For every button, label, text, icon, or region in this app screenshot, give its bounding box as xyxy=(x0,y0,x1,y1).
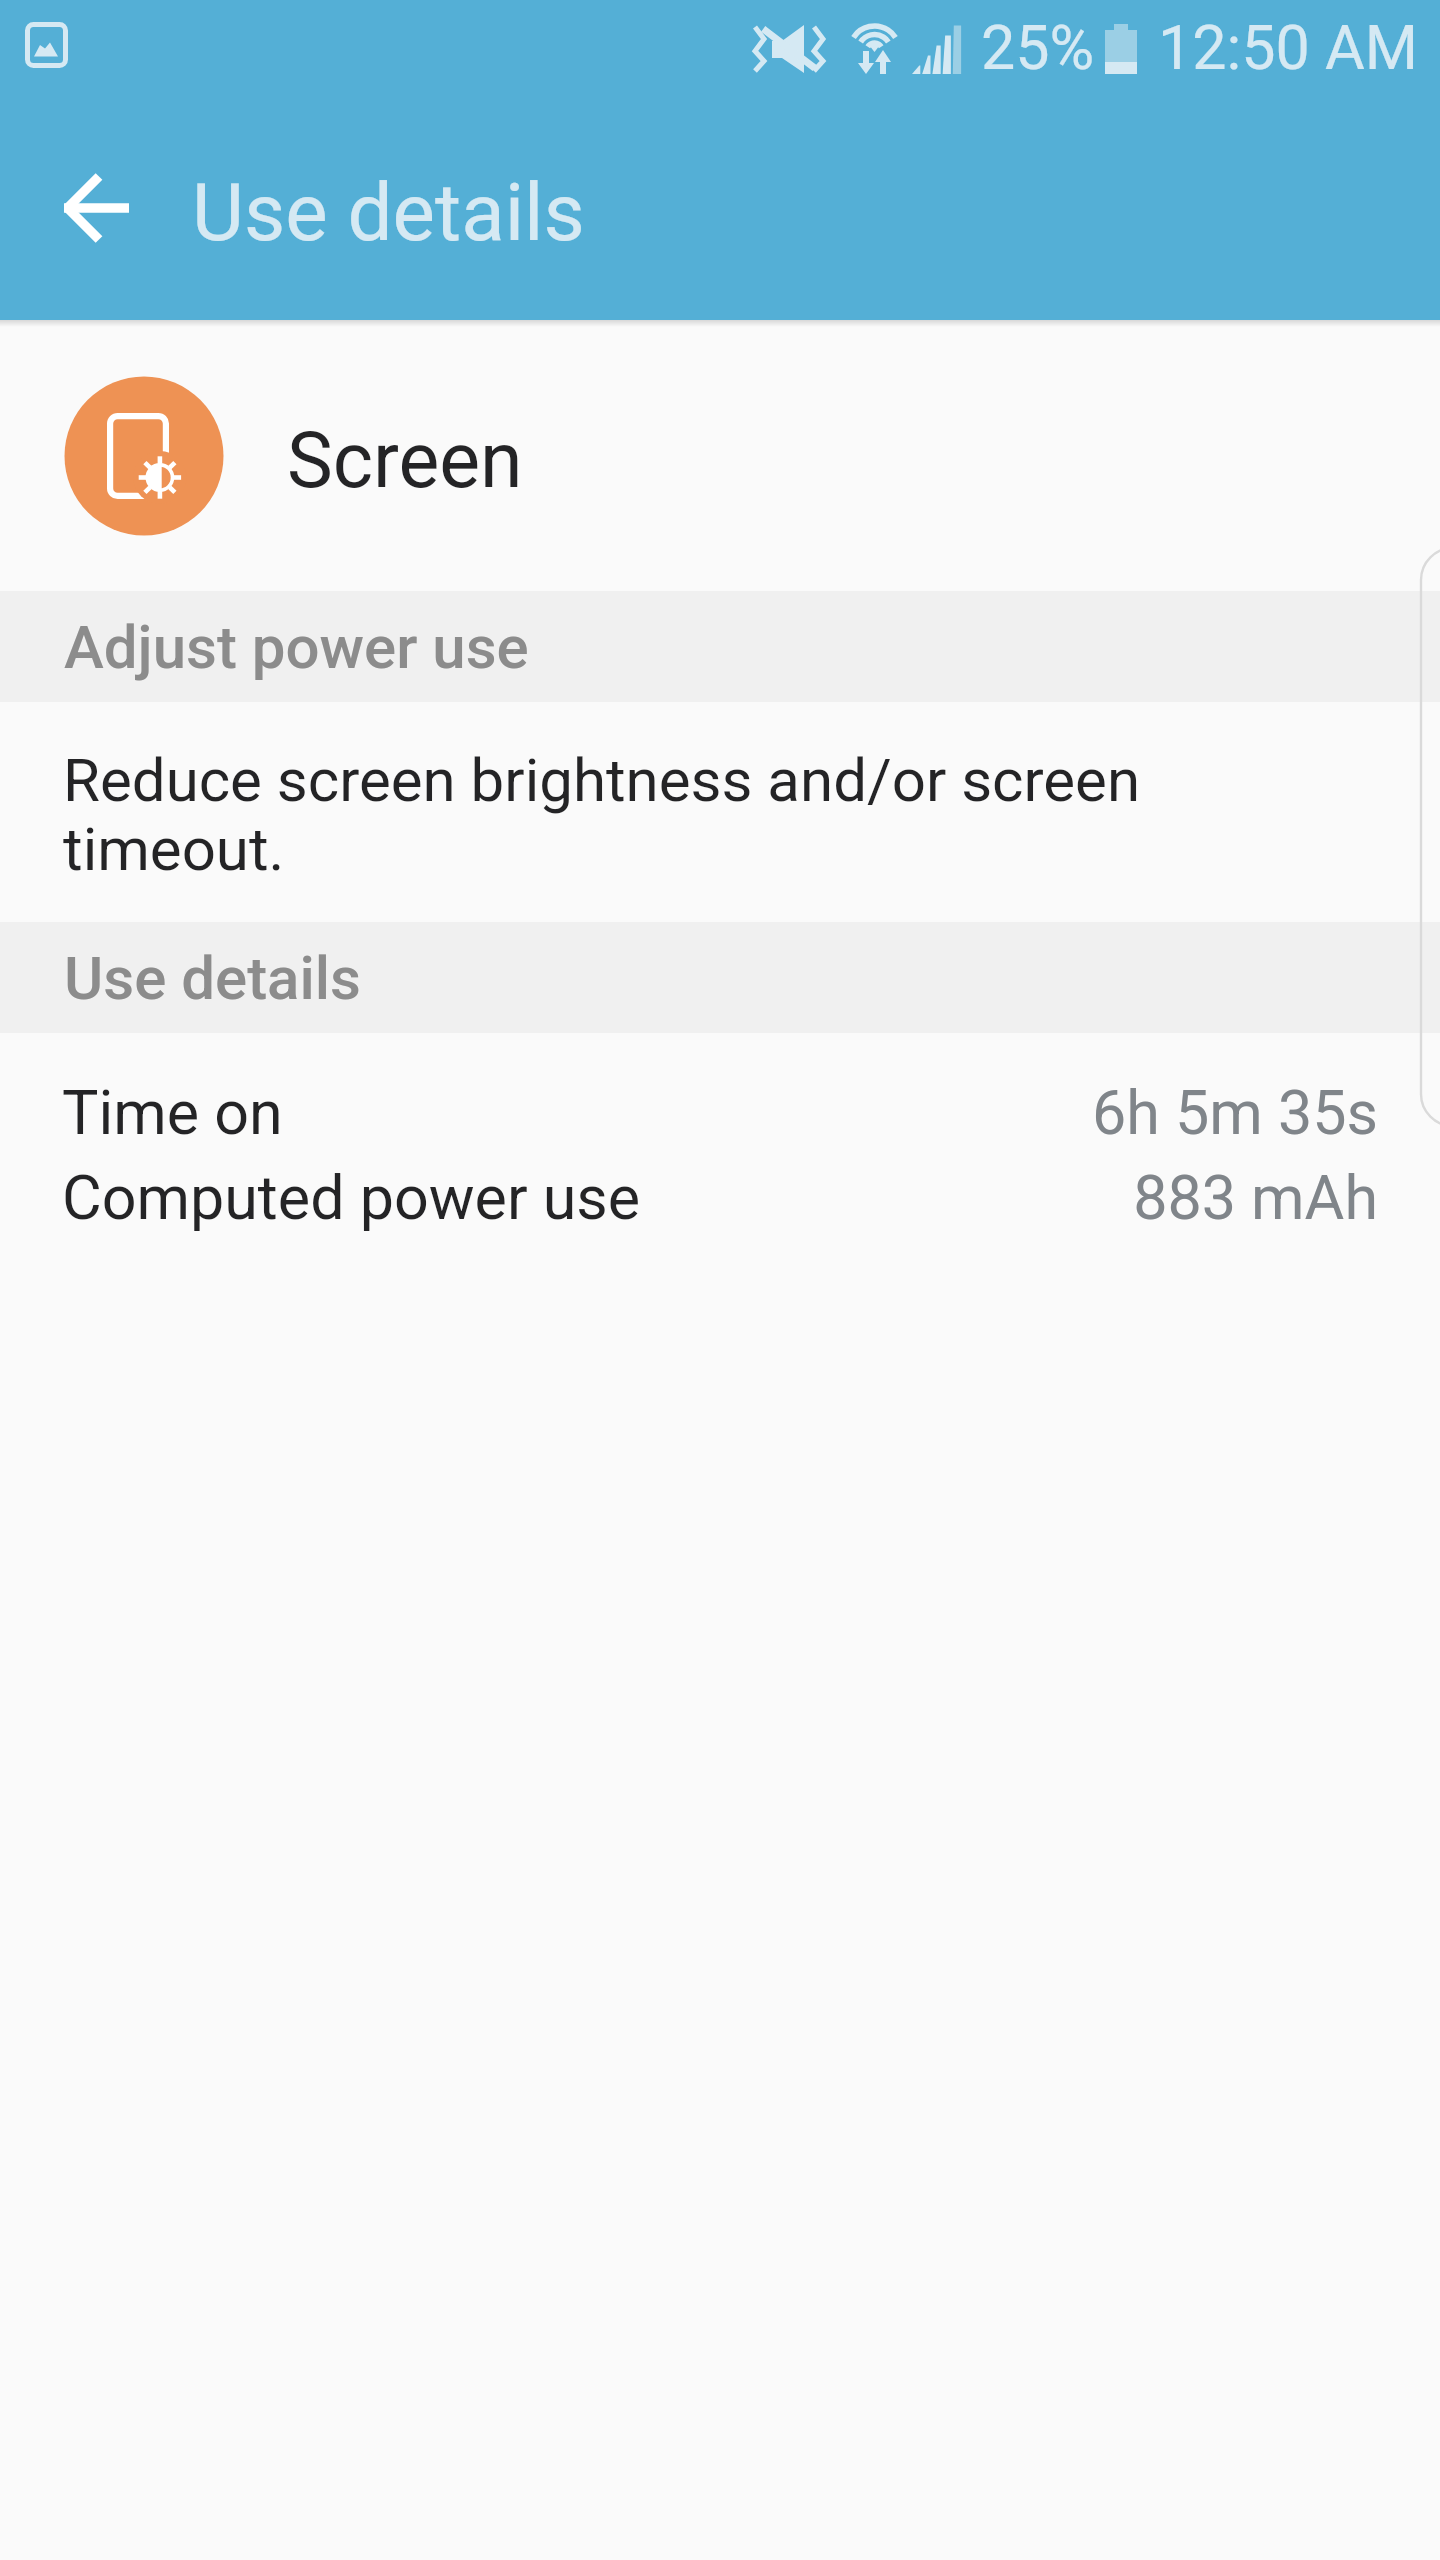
staticText: Use details xyxy=(192,166,585,260)
staticText: Computed power use xyxy=(62,1162,641,1233)
button[interactable]: Computed power use xyxy=(0,1162,1440,1247)
staticText: 6h 5m 35s xyxy=(0,1077,1378,1148)
button[interactable]: Reduce screen brightness and/or screen t… xyxy=(0,702,1440,922)
staticText: 883 mAh xyxy=(0,1162,1378,1233)
button[interactable]: Time on xyxy=(0,1077,1440,1162)
staticText: Use details xyxy=(64,943,361,1013)
staticText: Time on xyxy=(62,1077,283,1148)
staticText: 25% xyxy=(981,12,1095,83)
button[interactable]: Navigate up xyxy=(16,128,176,288)
staticText: 12:50 AM xyxy=(1158,12,1419,83)
staticText: Reduce screen brightness and/or screen t… xyxy=(63,745,1203,884)
staticText: Adjust power use xyxy=(64,612,529,682)
button[interactable]: Screen xyxy=(0,320,1440,591)
staticText: Screen xyxy=(287,416,523,506)
